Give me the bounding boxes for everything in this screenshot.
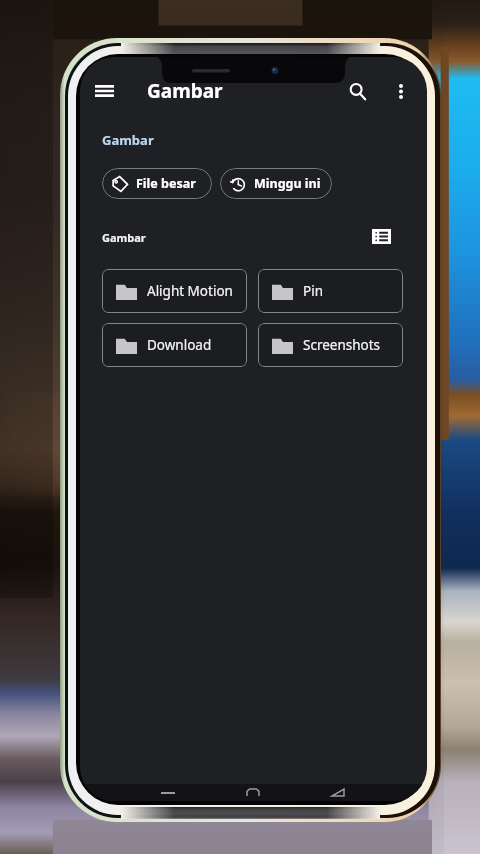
button[interactable]: Recent apps bbox=[158, 784, 178, 801]
button[interactable]: Screenshots bbox=[258, 323, 403, 367]
staticText: Pin bbox=[303, 282, 323, 300]
button[interactable]: Search bbox=[342, 76, 372, 106]
staticText: File besar bbox=[136, 175, 196, 192]
staticText: Gambar bbox=[102, 230, 146, 245]
button[interactable]: Download bbox=[102, 323, 247, 367]
button[interactable]: Home bbox=[243, 784, 263, 801]
button[interactable]: Alight Motion bbox=[102, 269, 247, 313]
button[interactable]: Minggu ini bbox=[220, 168, 332, 199]
staticText: Download bbox=[147, 336, 212, 354]
staticText: Alight Motion bbox=[147, 282, 233, 300]
button[interactable]: More options bbox=[386, 76, 416, 106]
button[interactable]: Back bbox=[328, 784, 348, 801]
button[interactable]: Switch to list view bbox=[368, 223, 394, 249]
button[interactable]: Open navigation drawer bbox=[90, 77, 118, 105]
button[interactable]: Pin bbox=[258, 269, 403, 313]
staticText: Gambar bbox=[147, 78, 223, 104]
staticText: Minggu ini bbox=[254, 175, 321, 192]
staticText: Gambar bbox=[102, 131, 154, 149]
staticText: Screenshots bbox=[303, 336, 381, 354]
button[interactable]: File besar bbox=[102, 168, 212, 199]
